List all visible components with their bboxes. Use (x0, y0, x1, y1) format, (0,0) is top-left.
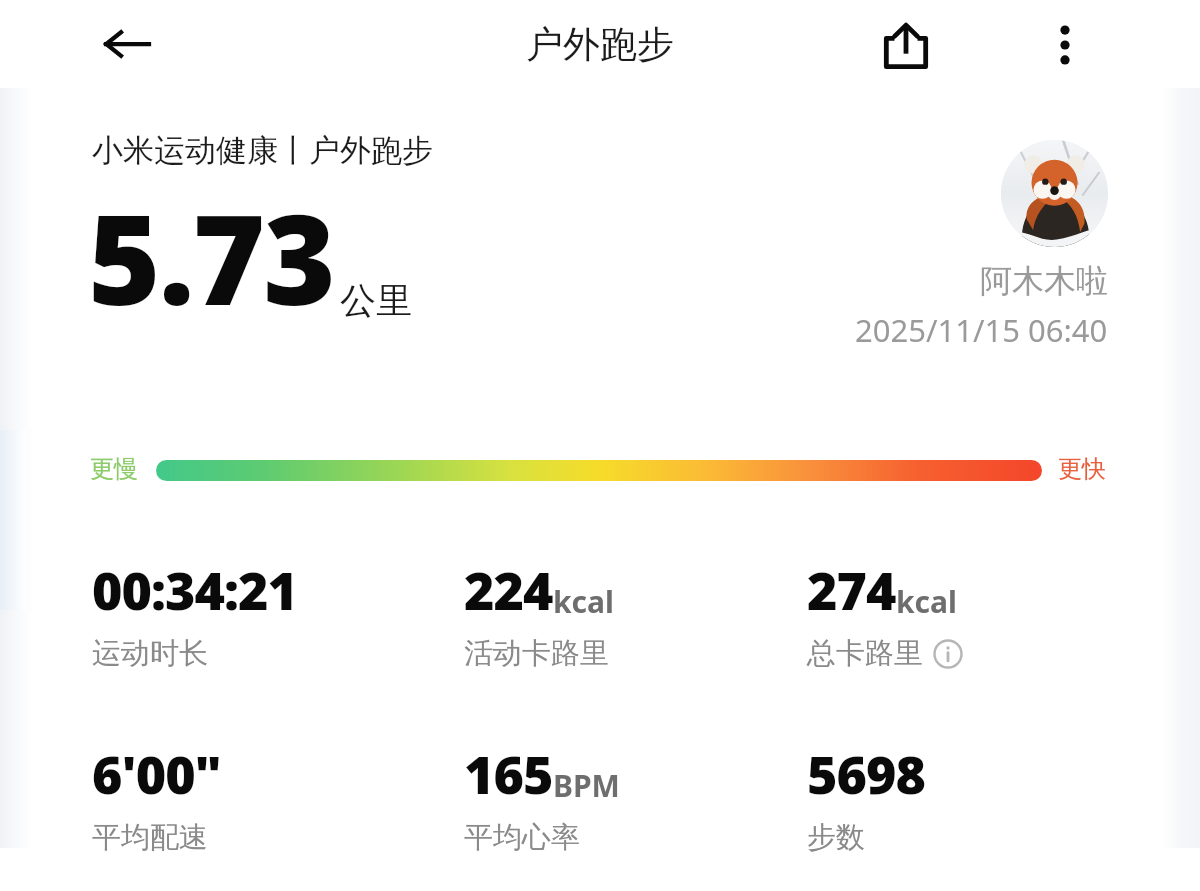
button[interactable]: 274 (807, 554, 1137, 672)
button[interactable]: Back (92, 10, 160, 78)
staticText: 小米运动健康丨户外跑步 (92, 131, 433, 170)
staticText: 224 (464, 554, 553, 625)
button[interactable]: 6'00" (92, 738, 422, 856)
staticText: 阿木木啦 (980, 261, 1108, 301)
staticText: 更慢 (90, 454, 138, 484)
staticText: 更快 (1058, 454, 1106, 484)
button[interactable]: 224 (464, 554, 794, 672)
staticText: kcal (553, 581, 614, 622)
staticText: 总卡路里 (807, 635, 923, 672)
staticText: 户外跑步 (526, 21, 674, 68)
staticText: 5.73 (88, 172, 334, 341)
staticText: 平均配速 (92, 819, 208, 856)
button[interactable]: 阿木木啦 (760, 140, 1108, 351)
button[interactable]: 00:34:21 (92, 554, 422, 672)
staticText: 公里 (340, 278, 412, 323)
staticText: kcal (896, 581, 957, 622)
staticText: 活动卡路里 (464, 635, 609, 672)
staticText: 5698 (807, 738, 925, 809)
button[interactable]: 5698 (807, 738, 1137, 856)
staticText: 00:34:21 (92, 554, 297, 625)
staticText: BPM (553, 765, 620, 806)
staticText: 6'00" (92, 738, 221, 809)
button[interactable]: Share (868, 8, 944, 84)
staticText: 165 (464, 738, 553, 809)
button[interactable]: More options (1028, 8, 1102, 82)
staticText: 运动时长 (92, 635, 208, 672)
staticText: 2025/11/15 06:40 (855, 309, 1108, 351)
button[interactable]: 165 (464, 738, 794, 856)
staticText: 平均心率 (464, 819, 580, 856)
staticText: 274 (807, 554, 896, 625)
staticText: 步数 (807, 819, 865, 856)
